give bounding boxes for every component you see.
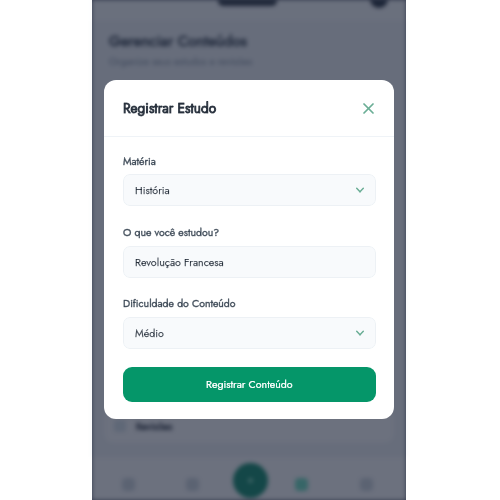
- button[interactable]: Médio: [123, 317, 376, 349]
- staticText: Revisões: [136, 419, 173, 433]
- staticText: Registrar Conteúdo: [206, 377, 293, 392]
- staticText: Revolução Francesa: [135, 255, 224, 270]
- staticText: Gerenciar Conteúdos: [109, 30, 247, 52]
- staticText: Revisões: [136, 419, 173, 433]
- staticText: Revolução Francesa: [135, 255, 224, 270]
- staticText: Matéria: [123, 154, 156, 169]
- staticText: Médio: [135, 326, 164, 341]
- staticText: Dificuldade do Conteúdo: [123, 296, 236, 311]
- staticText: O que você estudou?: [123, 225, 220, 240]
- button[interactable]: Registrar Conteúdo: [123, 367, 376, 402]
- button[interactable]: Fechar: [359, 99, 377, 117]
- staticText: Registrar Estudo: [123, 98, 217, 118]
- button[interactable]: Revolução Francesa: [123, 246, 376, 278]
- button[interactable]: História: [123, 174, 376, 206]
- staticText: História: [135, 183, 170, 198]
- staticText: História: [135, 183, 170, 198]
- staticText: Dificuldade do Conteúdo: [123, 296, 236, 311]
- staticText: O que você estudou?: [123, 225, 220, 240]
- staticText: Gerenciar Conteúdos: [109, 30, 247, 52]
- staticText: Organize seus estudos e revisões: [109, 54, 253, 69]
- staticText: Matéria: [123, 154, 156, 169]
- staticText: Registrar Estudo: [123, 98, 217, 118]
- staticText: Médio: [135, 326, 164, 341]
